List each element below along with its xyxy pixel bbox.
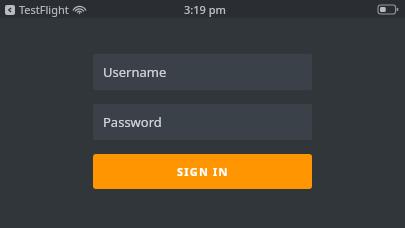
staticText: SIGN IN <box>177 164 229 179</box>
staticText: Username <box>103 63 167 81</box>
other: Battery <box>378 5 398 14</box>
button[interactable]: SIGN IN <box>93 154 312 189</box>
button[interactable]: Back to TestFlight <box>5 2 85 17</box>
button[interactable]: Username <box>93 54 312 90</box>
staticText: 3:19 pm <box>184 2 226 17</box>
button[interactable]: Password <box>93 104 312 140</box>
staticText: Password <box>103 113 162 131</box>
staticText: TestFlight <box>19 2 69 17</box>
